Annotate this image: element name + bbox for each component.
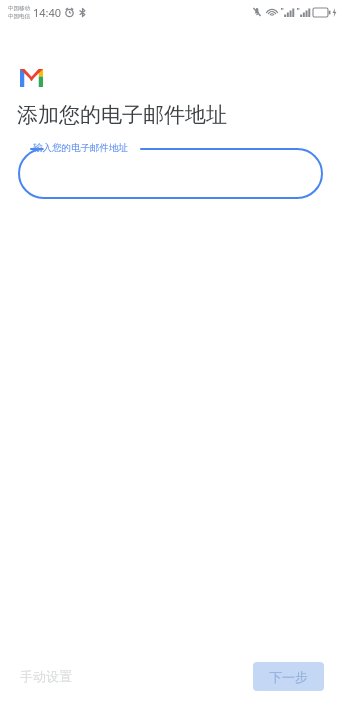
other: Gmail bbox=[20, 69, 43, 87]
staticText: 输入您的电子邮件地址 bbox=[33, 142, 128, 154]
staticText: 中国移动 bbox=[8, 5, 30, 12]
staticText: 14:40 bbox=[33, 5, 62, 20]
staticText: 手动设置 bbox=[20, 668, 72, 684]
button[interactable]: 下一步 bbox=[253, 662, 324, 691]
staticText: 下一步 bbox=[269, 669, 308, 685]
staticText: 添加您的电子邮件地址 bbox=[17, 102, 227, 128]
button[interactable]: 输入您的电子邮件地址 bbox=[19, 140, 322, 198]
button[interactable]: 手动设置 bbox=[14, 661, 78, 691]
staticText: 中国电信 bbox=[8, 13, 30, 20]
